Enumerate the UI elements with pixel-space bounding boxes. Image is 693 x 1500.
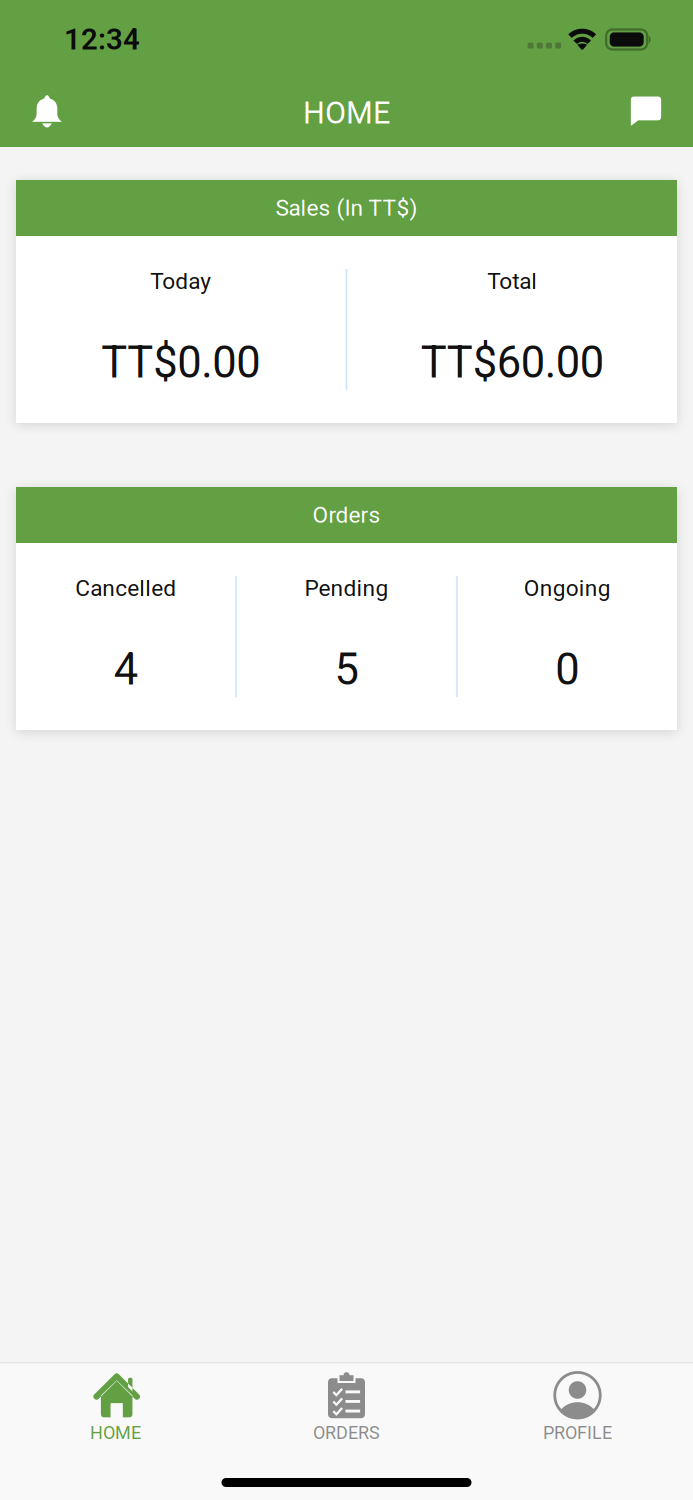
staticText: HOME — [90, 1422, 141, 1443]
staticText: PROFILE — [543, 1422, 612, 1443]
staticText: Cancelled — [75, 575, 176, 602]
staticText: TT$0.00 — [101, 337, 260, 388]
staticText: 4 — [114, 644, 138, 695]
staticText: ORDERS — [313, 1422, 380, 1443]
staticText: 0 — [555, 644, 579, 695]
staticText: TT$60.00 — [421, 337, 604, 388]
staticText: Today — [150, 268, 211, 295]
staticText: 5 — [334, 644, 358, 695]
staticText: Pending — [304, 575, 388, 602]
button[interactable]: ORDERS — [231, 1363, 462, 1463]
staticText: HOME — [303, 95, 390, 131]
button[interactable]: PROFILE — [462, 1363, 693, 1463]
button[interactable]: Messages — [614, 76, 678, 142]
staticText: Orders — [312, 502, 380, 528]
staticText: Total — [487, 268, 537, 295]
button[interactable]: Notifications — [14, 76, 78, 142]
staticText: 12:34 — [64, 22, 140, 57]
staticText: Ongoing — [524, 575, 611, 602]
button[interactable]: HOME — [0, 1363, 231, 1463]
staticText: Sales (In TT$) — [275, 195, 417, 221]
